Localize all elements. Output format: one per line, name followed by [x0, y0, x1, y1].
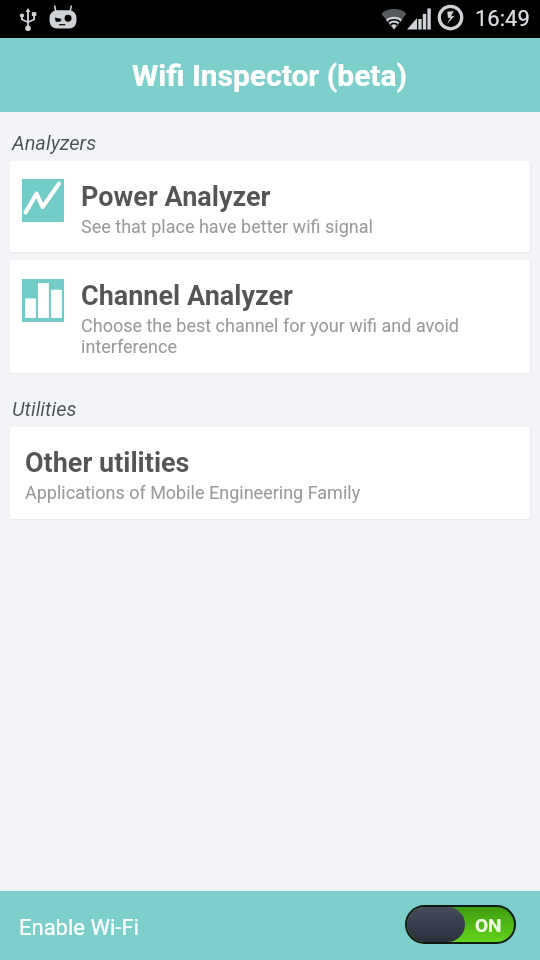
- staticText: Channel Analyzer: [81, 280, 293, 312]
- staticText: Choose the best channel for your wifi an…: [81, 315, 488, 357]
- staticText: Power Analyzer: [81, 181, 271, 213]
- staticText: 16:49: [475, 6, 530, 32]
- staticText: Enable Wi-Fi: [19, 915, 139, 941]
- button[interactable]: Enable Wi-Fi toggle: [405, 905, 516, 944]
- staticText: See that place have better wifi signal: [81, 216, 373, 237]
- staticText: Analyzers: [12, 131, 97, 154]
- staticText: ON: [475, 914, 502, 936]
- staticText: Applications of Mobile Engineering Famil…: [25, 482, 361, 503]
- staticText: Wifi Inspector (beta): [132, 58, 408, 93]
- staticText: Other utilities: [25, 447, 190, 479]
- button[interactable]: Channel Analyzer: [10, 260, 530, 373]
- staticText: Utilities: [12, 397, 77, 420]
- button[interactable]: Enable Wi-Fi: [0, 891, 540, 960]
- button[interactable]: Power Analyzer: [10, 161, 530, 252]
- button[interactable]: Other utilities: [10, 427, 530, 519]
